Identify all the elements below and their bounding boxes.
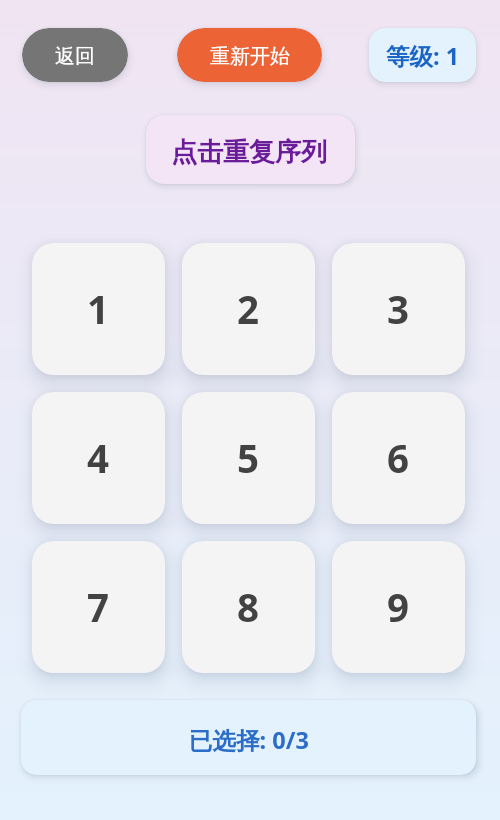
staticText: 8 <box>237 581 260 633</box>
staticText: 2 <box>237 283 260 335</box>
staticText: 点击重复序列 <box>171 136 327 169</box>
button[interactable]: 9 <box>332 541 465 673</box>
staticText: 已选择: 0/3 <box>189 724 309 756</box>
staticText: 9 <box>387 581 410 633</box>
button[interactable]: 返回 <box>22 28 128 82</box>
staticText: 返回 <box>55 44 95 69</box>
button[interactable]: 等级: 1 <box>369 28 476 82</box>
button[interactable]: 3 <box>332 243 465 375</box>
staticText: 4 <box>87 432 110 484</box>
staticText: 1 <box>87 283 110 335</box>
button[interactable]: 2 <box>182 243 315 375</box>
staticText: 6 <box>387 432 410 484</box>
staticText: 7 <box>87 581 110 633</box>
button[interactable]: 5 <box>182 392 315 524</box>
button[interactable]: 4 <box>32 392 165 524</box>
button[interactable]: 7 <box>32 541 165 673</box>
staticText: 3 <box>387 283 410 335</box>
button[interactable]: 重新开始 <box>177 28 322 82</box>
staticText: 5 <box>237 432 260 484</box>
button[interactable]: 8 <box>182 541 315 673</box>
button[interactable]: 6 <box>332 392 465 524</box>
staticText: 重新开始 <box>210 44 290 69</box>
staticText: 等级: 1 <box>386 40 460 72</box>
button[interactable]: 1 <box>32 243 165 375</box>
